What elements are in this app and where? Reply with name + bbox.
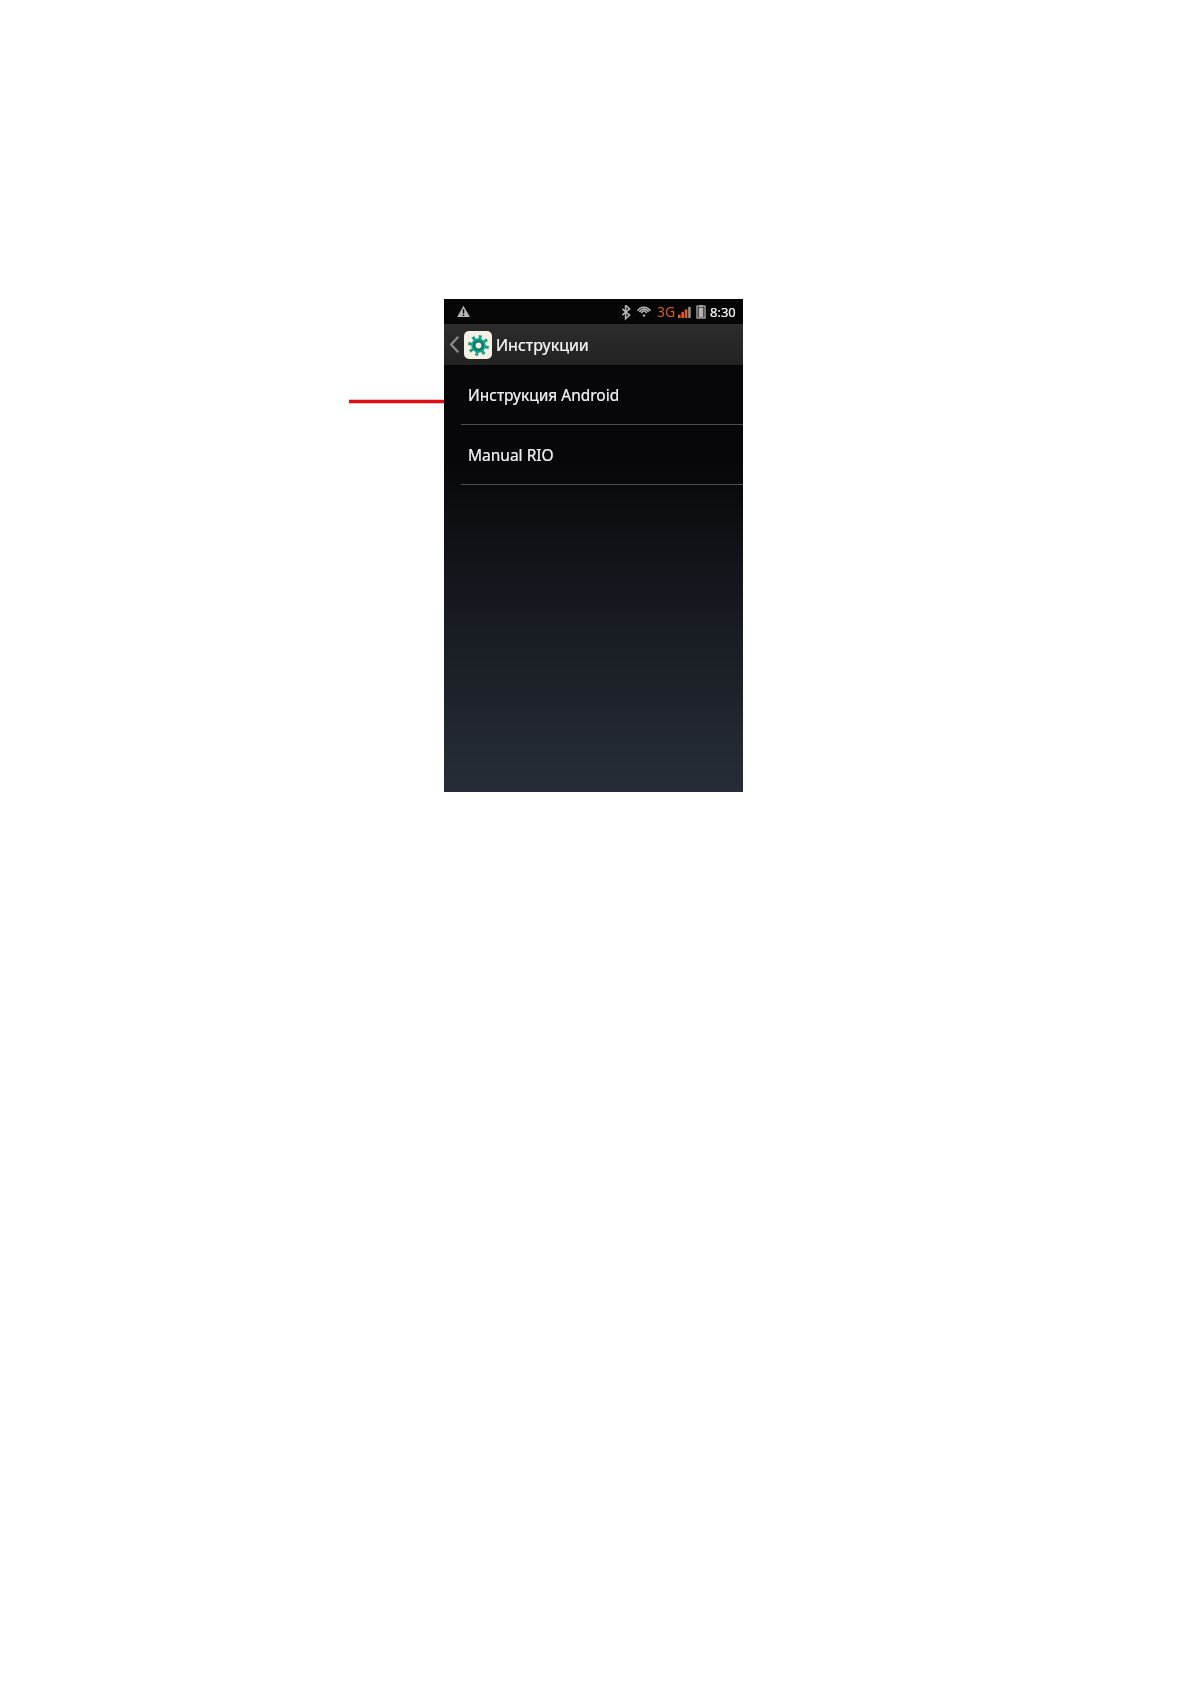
staticText: Инструкции <box>496 334 589 356</box>
staticText: 8:30 <box>710 303 736 321</box>
button[interactable]: Назад <box>444 324 500 365</box>
staticText: Инструкция Android <box>468 384 620 405</box>
button[interactable]: Инструкция Android <box>444 365 743 424</box>
staticText: Manual RIO <box>468 444 554 465</box>
button[interactable]: Manual RIO <box>444 425 743 484</box>
staticText: 3G <box>657 302 676 321</box>
